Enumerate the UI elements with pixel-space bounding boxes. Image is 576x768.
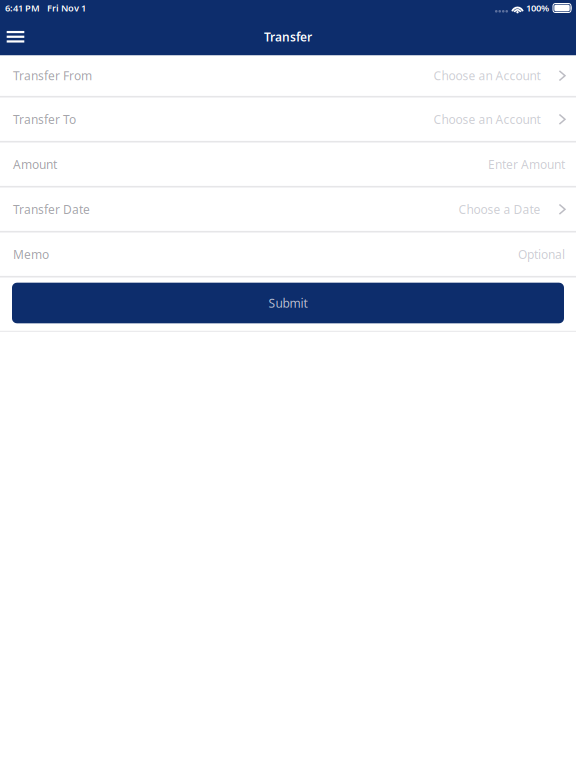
staticText: Transfer To bbox=[13, 111, 76, 127]
staticText: 6:41 PM bbox=[5, 2, 40, 14]
button[interactable]: Transfer To bbox=[0, 98, 576, 143]
staticText: Choose a Date bbox=[458, 201, 540, 217]
button[interactable]: Submit bbox=[12, 283, 564, 323]
staticText: Memo bbox=[13, 246, 49, 262]
button[interactable]: Menu bbox=[0, 20, 31, 54]
button[interactable]: Transfer From bbox=[0, 55, 576, 98]
button[interactable]: Amount bbox=[0, 143, 576, 188]
staticText: 100% bbox=[526, 2, 549, 14]
staticText: Transfer Date bbox=[13, 201, 90, 217]
staticText: Enter Amount bbox=[488, 156, 565, 172]
button[interactable]: Transfer Date bbox=[0, 188, 576, 233]
staticText: Choose an Account bbox=[433, 68, 540, 84]
staticText: Submit bbox=[268, 295, 307, 311]
button[interactable]: Memo bbox=[0, 233, 576, 278]
staticText: Fri Nov 1 bbox=[47, 2, 86, 14]
staticText: Choose an Account bbox=[433, 111, 540, 127]
staticText: Amount bbox=[13, 156, 57, 172]
staticText: Transfer From bbox=[13, 68, 92, 84]
staticText: Transfer bbox=[264, 29, 312, 45]
staticText: Optional bbox=[518, 246, 565, 262]
